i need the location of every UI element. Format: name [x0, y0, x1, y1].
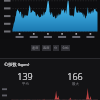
button[interactable]: 心拍数 (bpm)	[0, 59, 100, 100]
button[interactable]: 心拍	[62, 46, 69, 50]
staticText: 166	[67, 70, 83, 82]
button[interactable]: 速度	[31, 45, 70, 51]
staticText: 心拍	[62, 46, 69, 50]
button[interactable]: Elevation chart	[0, 0, 100, 39]
staticText: 分	[54, 46, 58, 50]
staticText: 平均	[22, 82, 29, 86]
other: Heart rate chart	[0, 87, 100, 100]
button[interactable]: 高度	[43, 46, 50, 50]
staticText: 速度	[32, 46, 39, 50]
button[interactable]: 分	[54, 46, 58, 50]
button[interactable]: 166	[50, 70, 100, 86]
staticText: 139	[17, 70, 33, 82]
staticText: 心拍数 (bpm)	[4, 62, 30, 68]
button[interactable]: 139	[0, 70, 50, 86]
staticText: 最大	[72, 82, 79, 86]
other: Elevation chart	[0, 0, 100, 39]
button[interactable]: 速度	[32, 46, 39, 50]
staticText: 高度	[43, 46, 50, 50]
